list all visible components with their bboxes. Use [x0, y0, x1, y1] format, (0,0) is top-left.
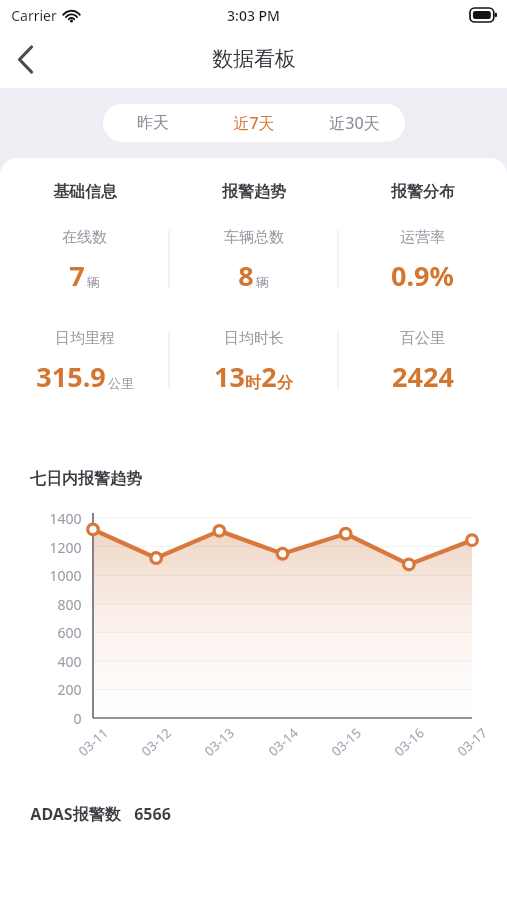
button[interactable]: 昨天: [103, 104, 203, 142]
staticText: 1200: [49, 538, 82, 557]
staticText: 1000: [49, 566, 82, 585]
staticText: 03-11: [74, 724, 112, 760]
staticText: 近7天: [233, 112, 275, 134]
staticText: 报警趋势: [222, 182, 286, 202]
staticText: 辆: [256, 274, 269, 290]
staticText: 0: [73, 709, 82, 728]
staticText: 基础信息: [53, 182, 117, 202]
staticText: 800: [57, 595, 82, 614]
staticText: 公里: [108, 375, 134, 391]
staticText: 2424: [392, 358, 454, 395]
staticText: 日均时长: [224, 329, 284, 348]
staticText: 昨天: [137, 113, 169, 133]
staticText: 03-13: [200, 724, 238, 760]
button[interactable]: Back: [0, 34, 50, 84]
staticText: Carrier: [11, 6, 57, 25]
staticText: 时: [245, 373, 261, 393]
staticText: 03-16: [390, 724, 428, 760]
staticText: 近30天: [329, 112, 380, 134]
staticText: 6566: [134, 803, 171, 825]
staticText: 13: [214, 358, 245, 395]
staticText: 03-15: [327, 724, 365, 760]
staticText: 百公里: [400, 329, 445, 348]
staticText: 315.9: [36, 358, 106, 395]
staticText: 数据看板: [212, 46, 296, 72]
staticText: 03-17: [453, 724, 491, 760]
staticText: 0.9%: [391, 257, 454, 294]
staticText: 400: [57, 652, 82, 671]
staticText: 日均里程: [55, 329, 115, 348]
staticText: 2: [261, 358, 277, 395]
staticText: 3:03 PM: [227, 6, 280, 25]
staticText: 辆: [87, 274, 100, 290]
staticText: 运营率: [400, 228, 445, 247]
button[interactable]: 近30天: [304, 104, 405, 142]
staticText: 7: [69, 257, 85, 294]
button[interactable]: 近7天: [203, 104, 304, 142]
staticText: ADAS报警数: [30, 803, 121, 825]
staticText: 03-12: [137, 724, 175, 760]
staticText: 03-14: [264, 724, 302, 760]
staticText: 分: [277, 373, 293, 393]
staticText: 200: [57, 680, 82, 699]
staticText: 在线数: [62, 228, 107, 247]
staticText: 报警分布: [391, 182, 455, 202]
staticText: 七日内报警趋势: [30, 469, 142, 489]
staticText: 8: [238, 257, 254, 294]
staticText: 600: [57, 623, 82, 642]
staticText: 1400: [49, 509, 82, 528]
staticText: 车辆总数: [224, 228, 284, 247]
